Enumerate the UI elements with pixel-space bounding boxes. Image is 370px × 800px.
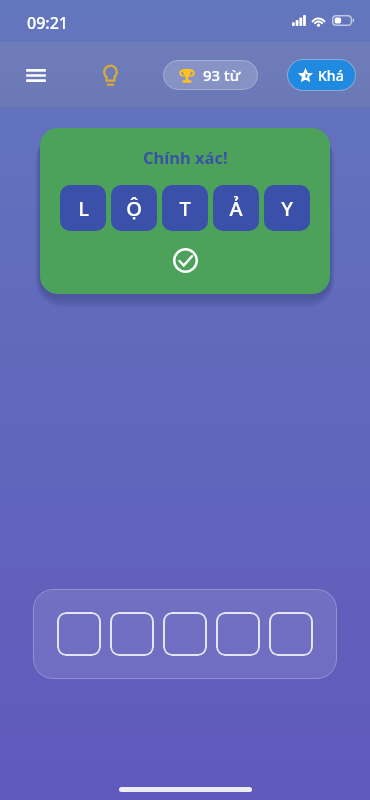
button[interactable]: Ả bbox=[213, 185, 259, 231]
button[interactable]: L bbox=[60, 185, 106, 231]
button[interactable]: 93 từ bbox=[163, 60, 258, 90]
button[interactable]: Hint bbox=[88, 53, 132, 97]
staticText: 93 từ bbox=[203, 65, 241, 85]
staticText: Ộ bbox=[126, 195, 142, 222]
staticText: Ả bbox=[229, 195, 243, 222]
staticText: 09:21 bbox=[27, 12, 68, 34]
button[interactable] bbox=[57, 612, 101, 656]
button[interactable]: Y bbox=[264, 185, 310, 231]
button[interactable] bbox=[216, 612, 260, 656]
button[interactable]: Menu bbox=[14, 53, 58, 97]
button[interactable] bbox=[110, 612, 154, 656]
button[interactable] bbox=[269, 612, 313, 656]
staticText: L bbox=[78, 195, 89, 222]
button[interactable] bbox=[163, 612, 207, 656]
staticText: Chính xác! bbox=[143, 146, 228, 168]
button[interactable]: T bbox=[162, 185, 208, 231]
staticText: T bbox=[179, 195, 191, 222]
button[interactable]: Khá bbox=[288, 60, 355, 90]
button[interactable]: Correct bbox=[173, 248, 198, 273]
staticText: Y bbox=[281, 195, 293, 222]
button[interactable]: Ộ bbox=[111, 185, 157, 231]
staticText: Khá bbox=[318, 66, 344, 85]
